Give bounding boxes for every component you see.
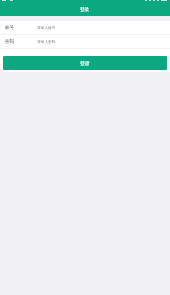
other: Notifications [2,0,13,1]
button[interactable]: 登录 [3,56,167,70]
staticText: 登录 [80,60,90,66]
staticText: 账号 [5,25,15,31]
staticText: 密码 [5,39,15,45]
staticText: 请输入密码 [37,39,56,44]
staticText: 登录 [80,7,90,13]
other: Signal, wifi and battery [145,0,167,1]
button[interactable]: 密码 [0,35,170,48]
button[interactable]: 账号 [0,21,170,34]
staticText: 请输入账号 [37,25,56,30]
